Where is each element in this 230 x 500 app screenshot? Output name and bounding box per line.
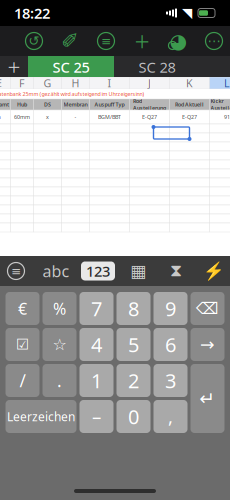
button[interactable]: 8 — [116, 292, 150, 325]
staticText: € — [18, 298, 27, 319]
button[interactable]: More — [200, 26, 228, 56]
staticText: ◕ — [169, 30, 186, 52]
button[interactable]: F — [10, 77, 33, 89]
button[interactable]: Return — [190, 364, 224, 433]
staticText: 3 — [165, 367, 176, 394]
staticText: 9 — [165, 295, 176, 322]
button[interactable]: % — [42, 292, 76, 325]
button[interactable]: 5 — [116, 328, 150, 361]
button[interactable]: 7 — [79, 292, 113, 325]
staticText: 18:22 — [14, 3, 50, 23]
staticText: Membran — [63, 101, 87, 108]
staticText: Leerzeichen — [7, 408, 75, 424]
button[interactable]: Functions — [1, 258, 31, 284]
button[interactable]: 3 — [153, 364, 187, 397]
staticText: – — [92, 404, 101, 429]
staticText: Rod Aktuell — [175, 101, 204, 108]
button[interactable]: 4 — [79, 328, 113, 361]
button[interactable]: Add sheet — [0, 56, 28, 78]
button[interactable]: Add — [128, 26, 156, 56]
staticText: DS — [44, 101, 51, 108]
staticText: Hub — [17, 101, 27, 108]
staticText: ≡ — [11, 264, 21, 278]
staticText: E-Q27 — [182, 113, 197, 121]
button[interactable]: Undo — [20, 26, 48, 56]
staticText: 123 — [86, 261, 110, 281]
staticText: J — [148, 76, 151, 90]
staticText: Auspuff Typ — [94, 101, 124, 108]
button[interactable]: , — [153, 400, 187, 433]
button[interactable]: 2 — [116, 364, 150, 397]
staticText: 2 — [128, 367, 139, 394]
staticText: BGM/BBT — [98, 113, 121, 121]
staticText: E — [0, 76, 2, 90]
staticText: L — [224, 76, 230, 90]
staticText: abc — [42, 260, 69, 282]
staticText: 1 — [91, 367, 102, 394]
button[interactable]: 1 — [79, 364, 113, 397]
staticText: F — [19, 76, 25, 90]
staticText: ⋯ — [207, 33, 220, 48]
staticText: SC Datenbank 25mm (gezählt wird aufsteig… — [0, 90, 144, 98]
button[interactable]: I — [89, 77, 129, 89]
staticText: ▦ — [130, 261, 146, 281]
button[interactable]: SC 25 — [28, 56, 114, 78]
staticText: G — [43, 76, 51, 90]
staticText: % — [53, 298, 66, 319]
button[interactable]: 9 — [153, 292, 187, 325]
button[interactable]: L — [209, 77, 230, 89]
staticText: → — [200, 335, 215, 354]
staticText: SC 28 — [138, 57, 175, 77]
staticText: ☑ — [16, 336, 29, 353]
button[interactable]: ⌫ — [190, 292, 224, 325]
staticText: + — [7, 52, 20, 82]
staticText: ⚡ — [203, 261, 225, 281]
button[interactable]: 123 — [81, 261, 115, 280]
button[interactable]: ☑ — [5, 328, 39, 361]
button[interactable]: → — [190, 328, 224, 361]
button[interactable]: E — [0, 77, 10, 89]
button[interactable]: Keyboard — [123, 258, 153, 284]
button[interactable]: / — [5, 364, 39, 397]
staticText: 7 — [91, 295, 102, 322]
staticText: 8 — [128, 295, 139, 322]
staticText: . — [57, 369, 62, 392]
staticText: I — [107, 76, 111, 90]
staticText: ↺ — [28, 33, 39, 48]
button[interactable]: K — [169, 77, 209, 89]
staticText: 5 — [128, 331, 139, 358]
staticText: x — [46, 113, 49, 121]
button[interactable]: Leerzeichen — [5, 400, 76, 433]
staticText: Rod Austeilerung — [133, 97, 166, 112]
staticText: 0 — [128, 403, 139, 430]
staticText: ◥ — [182, 5, 192, 20]
button[interactable]: G — [33, 77, 61, 89]
button[interactable]: Insert — [92, 26, 120, 56]
staticText: 91 — [224, 113, 230, 121]
staticText: ☆ — [52, 335, 66, 354]
button[interactable]: Format — [56, 26, 84, 56]
button[interactable]: € — [5, 292, 39, 325]
button[interactable]: 6 — [153, 328, 187, 361]
button[interactable]: Collaborate — [164, 26, 192, 56]
button[interactable]: 0 — [116, 400, 150, 433]
button[interactable]: . — [42, 364, 76, 397]
button[interactable]: Date and time — [161, 258, 191, 284]
button[interactable]: Formula — [199, 258, 229, 284]
staticText: SC 25 — [52, 57, 89, 77]
button[interactable]: SC 28 — [114, 56, 200, 78]
staticText: Kickr Austeilerung — [210, 97, 230, 112]
staticText: Gesamt — [0, 101, 9, 108]
button[interactable]: abc — [39, 258, 73, 284]
button[interactable]: – — [79, 400, 113, 433]
staticText: E-Q27 — [142, 113, 157, 121]
button[interactable]: ☆ — [42, 328, 76, 361]
staticText: - — [74, 113, 76, 121]
staticText: 4 — [91, 331, 102, 358]
staticText: + — [134, 23, 149, 59]
button[interactable]: J — [129, 77, 169, 89]
staticText: ⧗ — [170, 262, 182, 279]
staticText: / — [19, 369, 25, 392]
button[interactable]: H — [61, 77, 89, 89]
